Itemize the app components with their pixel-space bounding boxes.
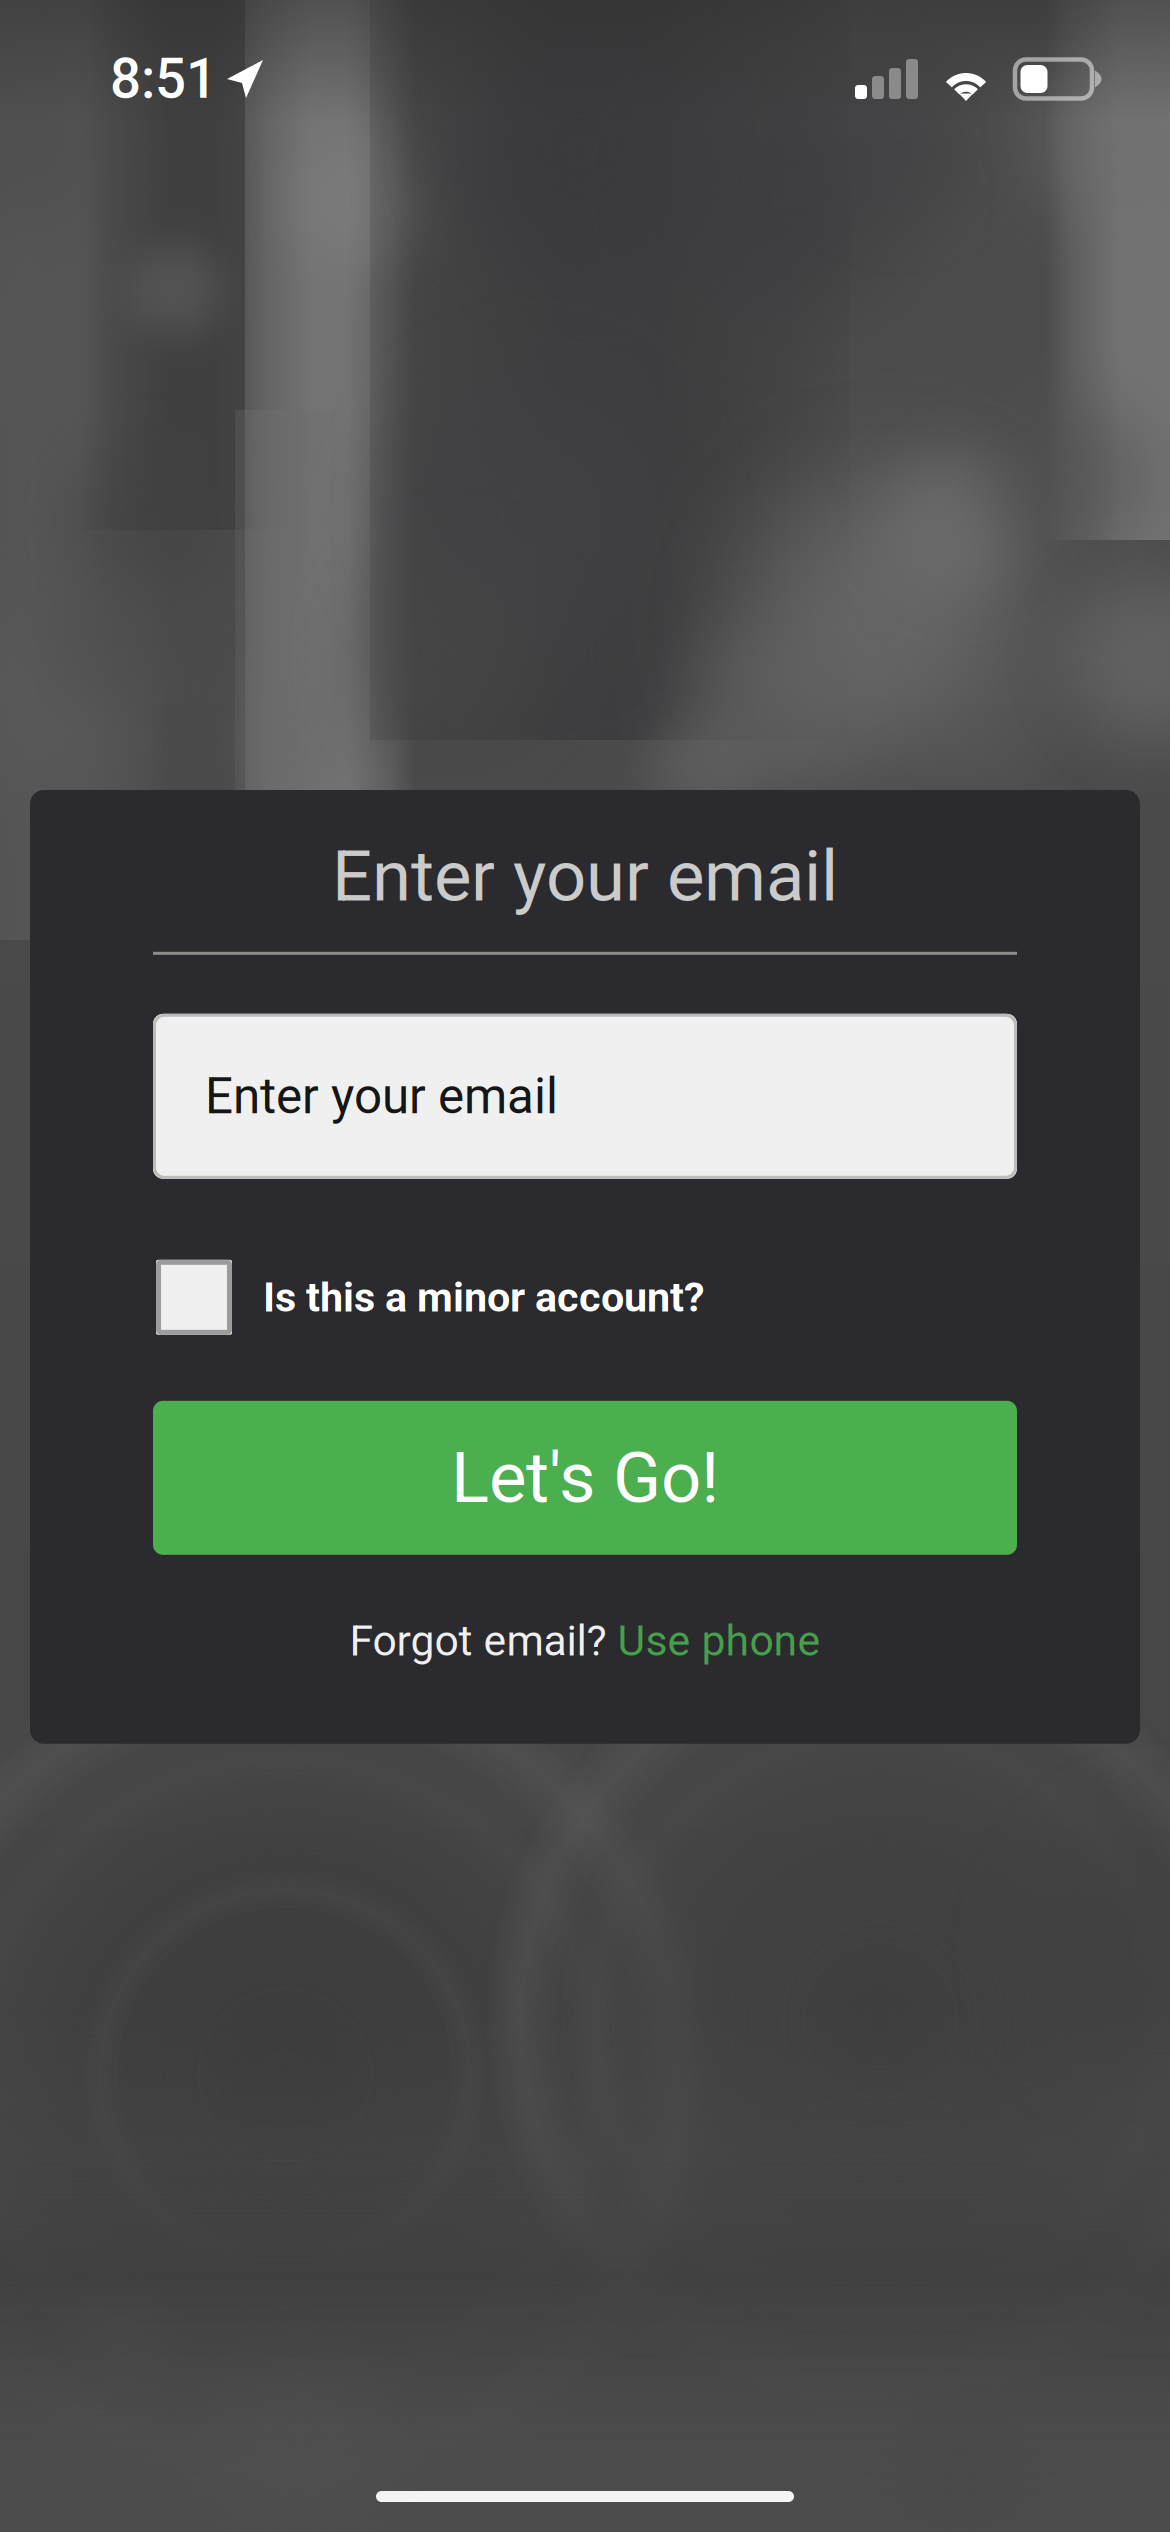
staticText: Use phone — [617, 1616, 820, 1666]
staticText: Is this a minor account? — [263, 1273, 705, 1321]
staticText: Enter your email — [332, 835, 838, 918]
button[interactable]: Let's Go! — [30, 1401, 1140, 1555]
button[interactable]: Enter your email — [30, 1014, 1140, 1179]
staticText: Enter your email — [205, 1067, 558, 1125]
button[interactable]: Forgot email? — [226, 1616, 943, 1666]
staticText: Forgot email? — [349, 1616, 617, 1666]
staticText: 8:51 — [110, 47, 217, 111]
button[interactable]: Is this a minor account? — [30, 1260, 1140, 1335]
staticText: Let's Go! — [451, 1436, 719, 1519]
